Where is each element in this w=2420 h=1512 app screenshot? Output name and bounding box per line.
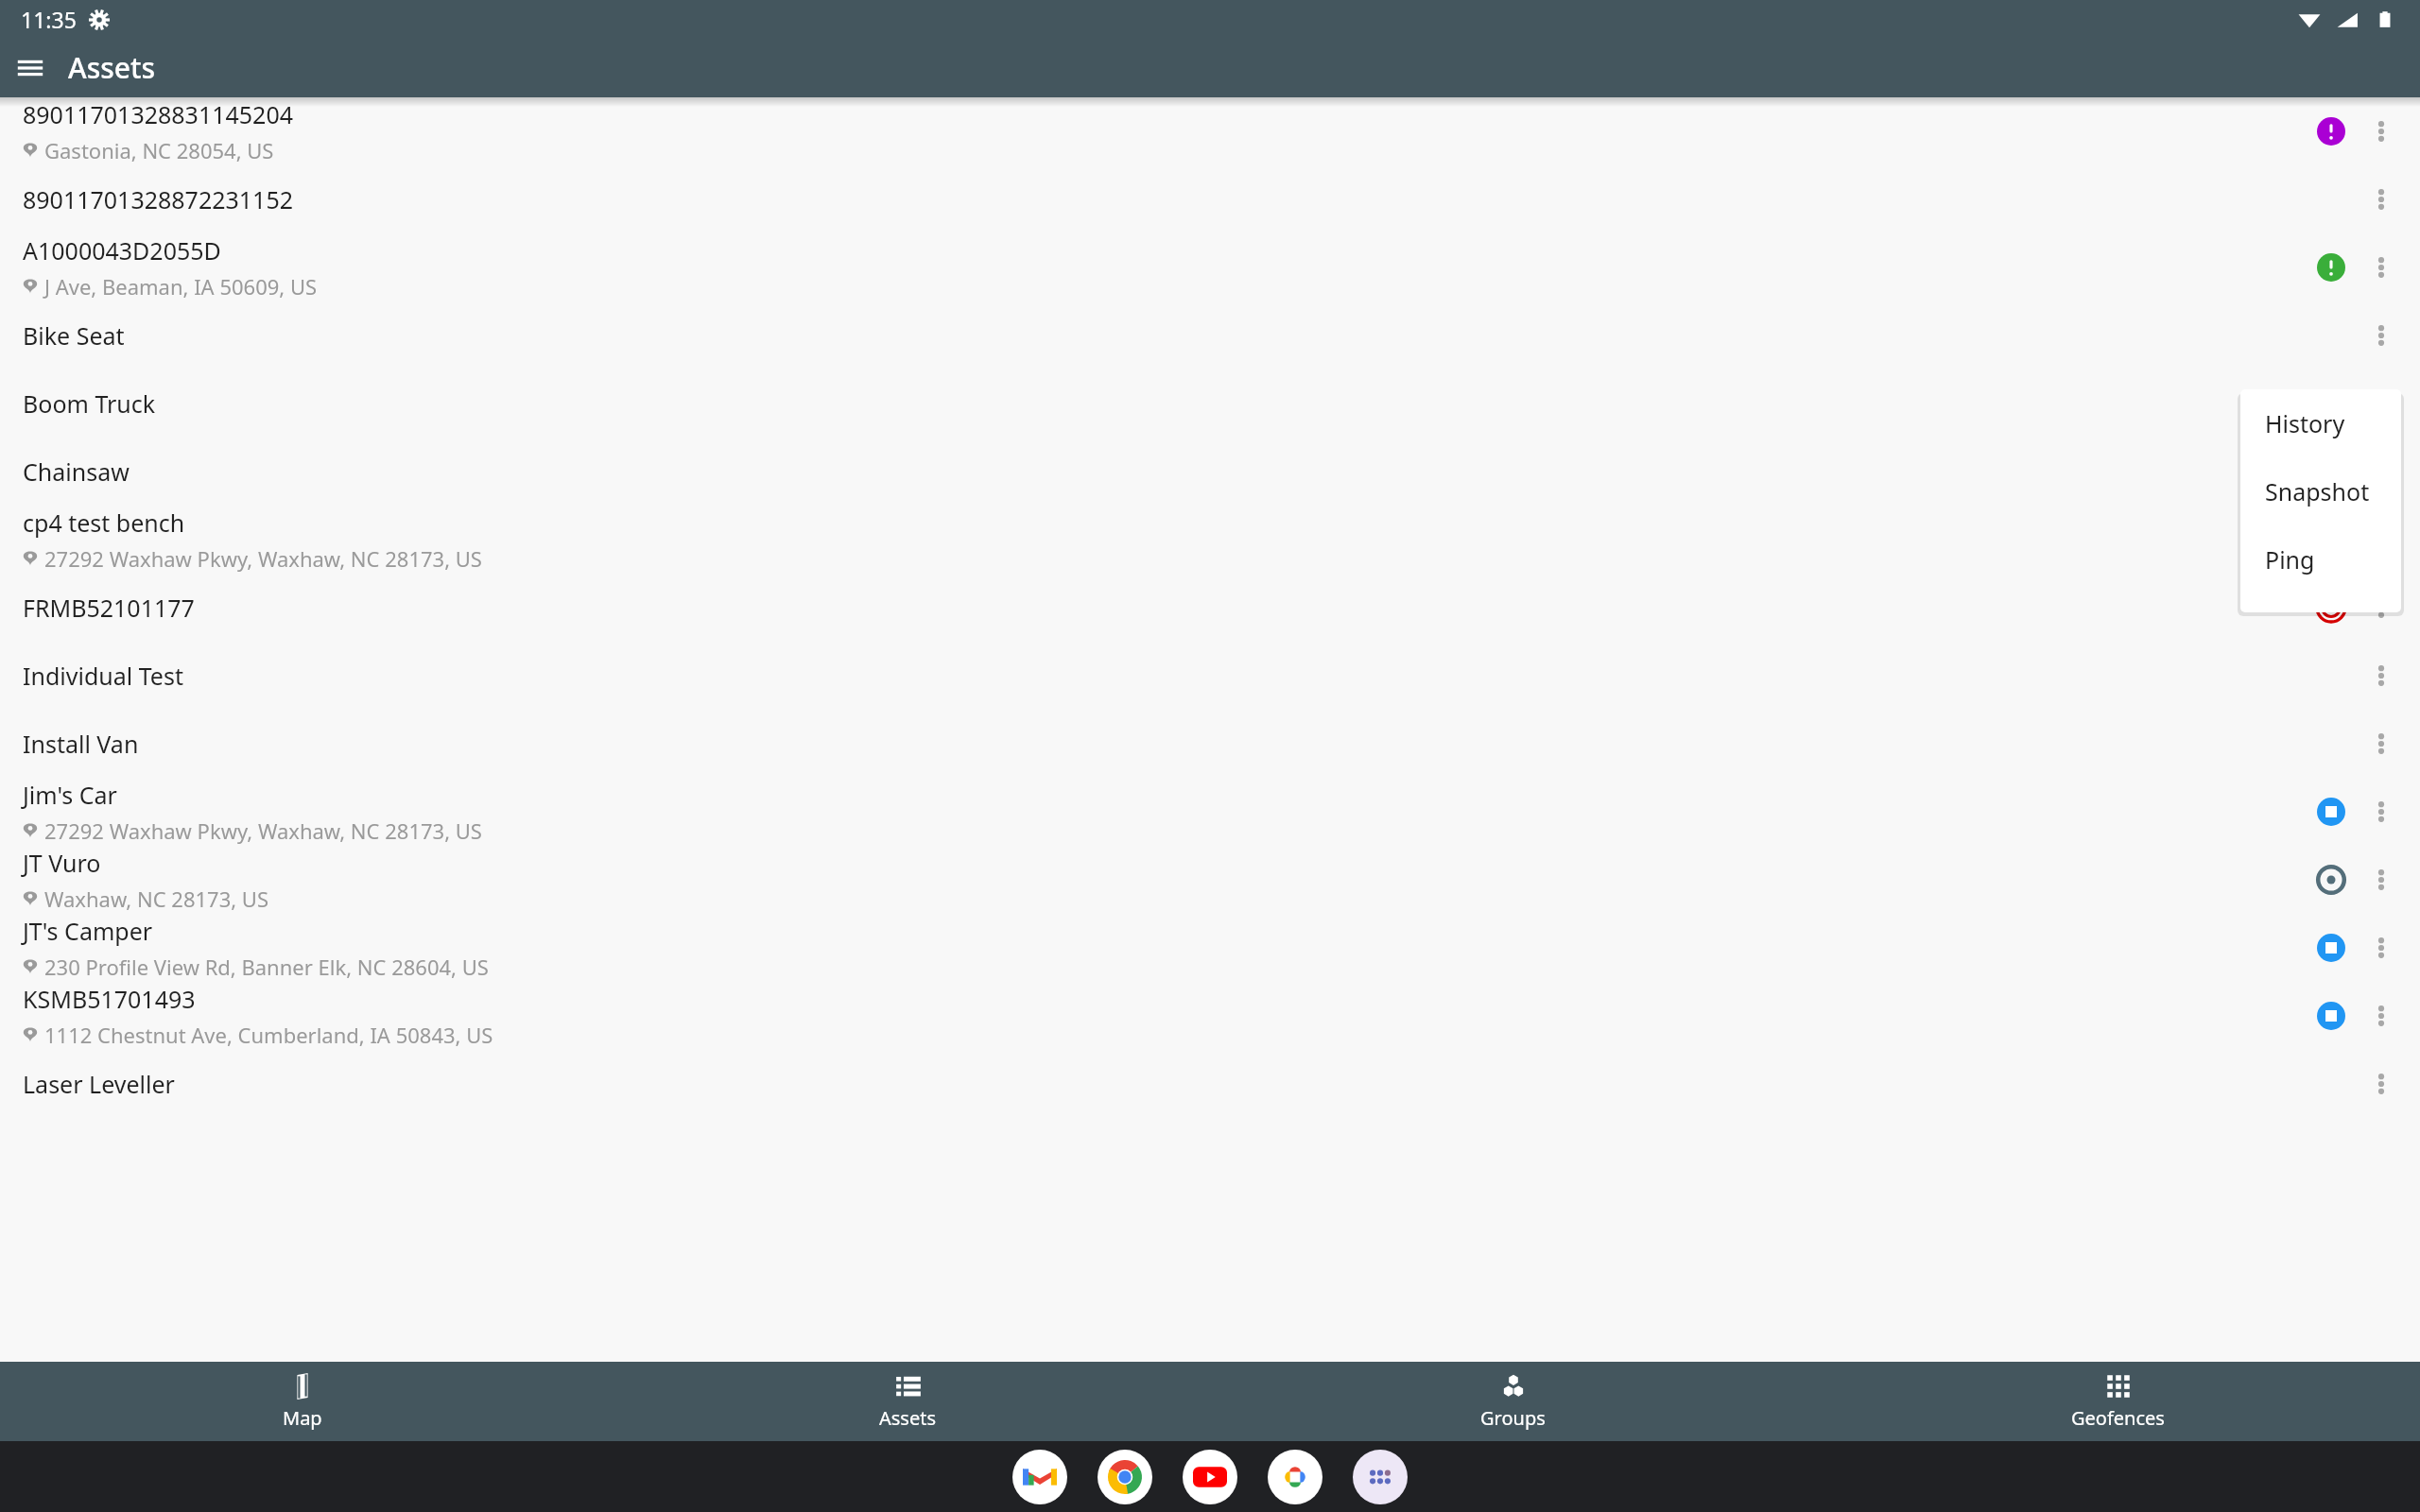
staticText: Jim's Car <box>23 779 117 811</box>
staticText: 89011701328872231152 <box>23 183 294 215</box>
staticText: Waxhaw, NC 28173, US <box>44 885 269 913</box>
button[interactable]: More options <box>2352 306 2411 365</box>
staticText: Groups <box>1480 1405 1546 1431</box>
button[interactable]: Individual Test <box>0 642 2420 710</box>
staticText: Geofences <box>2071 1405 2165 1431</box>
button[interactable]: More options <box>2352 170 2411 229</box>
staticText: Gastonia, NC 28054, US <box>44 136 274 164</box>
button[interactable]: More options <box>2352 510 2411 569</box>
button[interactable]: More options <box>2352 578 2411 637</box>
button[interactable]: 89011701328831145204 <box>0 97 2420 165</box>
button[interactable]: 89011701328872231152 <box>0 165 2420 233</box>
button[interactable]: App <box>1268 1450 1322 1504</box>
button[interactable]: Boom Truck <box>0 369 2420 438</box>
staticText: cp4 test bench <box>23 507 185 539</box>
staticText: Bike Seat <box>23 319 125 352</box>
button[interactable]: App <box>1183 1450 1237 1504</box>
staticText: 27292 Waxhaw Pkwy, Waxhaw, NC 28173, US <box>44 816 482 845</box>
staticText: Snapshot <box>2265 475 2370 507</box>
button[interactable]: More options <box>2352 850 2411 909</box>
button[interactable]: More options <box>2352 238 2411 297</box>
staticText: 89011701328831145204 <box>23 98 294 130</box>
button[interactable]: App <box>1353 1450 1408 1504</box>
button[interactable]: A1000043D2055D <box>0 233 2420 301</box>
staticText: KSMB51701493 <box>23 983 196 1015</box>
button[interactable]: History <box>2240 389 2401 457</box>
staticText: Ping <box>2265 543 2315 576</box>
staticText: Boom Truck <box>23 387 156 420</box>
staticText: Map <box>283 1405 322 1431</box>
button[interactable]: Groups <box>1210 1362 1815 1441</box>
staticText: 230 Profile View Rd, Banner Elk, NC 2860… <box>44 953 489 981</box>
button[interactable]: More options <box>2352 374 2411 433</box>
button[interactable]: More options <box>2352 646 2411 705</box>
button[interactable]: Install Van <box>0 710 2420 778</box>
staticText: Chainsaw <box>23 455 130 488</box>
button[interactable]: Ping <box>2240 525 2401 593</box>
staticText: JT's Camper <box>23 915 153 947</box>
staticText: A1000043D2055D <box>23 234 221 266</box>
button[interactable]: Chainsaw <box>0 438 2420 506</box>
staticText: Assets <box>68 48 156 87</box>
button[interactable]: cp4 test bench <box>0 506 2420 574</box>
staticText: JT Vuro <box>23 847 101 879</box>
button[interactable]: More options <box>2352 714 2411 773</box>
button[interactable]: More options <box>2352 1055 2411 1113</box>
button[interactable]: Map <box>0 1362 605 1441</box>
staticText: Assets <box>879 1405 937 1431</box>
staticText: Laser Leveller <box>23 1068 175 1100</box>
button[interactable]: Open navigation drawer <box>0 38 60 97</box>
staticText: History <box>2265 407 2345 439</box>
staticText: 27292 Waxhaw Pkwy, Waxhaw, NC 28173, US <box>44 544 482 573</box>
button[interactable]: More options <box>2352 919 2411 977</box>
button[interactable]: App <box>1012 1450 1067 1504</box>
button[interactable]: Jim's Car <box>0 778 2420 846</box>
button[interactable]: More options <box>2352 987 2411 1045</box>
staticText: 1112 Chestnut Ave, Cumberland, IA 50843,… <box>44 1021 493 1049</box>
button[interactable]: JT Vuro <box>0 846 2420 914</box>
button[interactable]: More options <box>2352 442 2411 501</box>
button[interactable]: App <box>1098 1450 1152 1504</box>
button[interactable]: Assets <box>605 1362 1210 1441</box>
staticText: Install Van <box>23 728 139 760</box>
staticText: J Ave, Beaman, IA 50609, US <box>44 272 318 301</box>
button[interactable]: More options <box>2352 782 2411 841</box>
button[interactable]: JT's Camper <box>0 914 2420 982</box>
button[interactable]: FRMB52101177 <box>0 574 2420 642</box>
staticText: Individual Test <box>23 660 183 692</box>
button[interactable]: More options <box>2352 102 2411 161</box>
staticText: FRMB52101177 <box>23 592 195 624</box>
button[interactable]: Geofences <box>1815 1362 2420 1441</box>
button[interactable]: KSMB51701493 <box>0 982 2420 1050</box>
button[interactable]: Bike Seat <box>0 301 2420 369</box>
button[interactable]: Laser Leveller <box>0 1050 2420 1118</box>
button[interactable]: Snapshot <box>2240 457 2401 525</box>
staticText: 11:35 <box>21 5 77 34</box>
